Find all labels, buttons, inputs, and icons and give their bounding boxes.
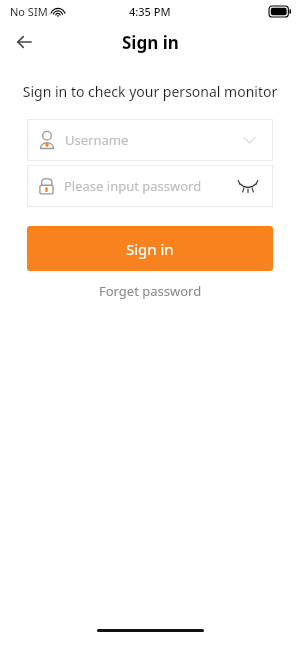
button[interactable]: Show account list (237, 128, 261, 152)
staticText: Please input password (64, 177, 235, 195)
button[interactable]: Please input password (27, 165, 273, 207)
button[interactable]: Forget password (87, 279, 214, 303)
button[interactable]: Show password (235, 173, 261, 199)
staticText: No SIM (10, 4, 48, 19)
staticText: Sign in to check your personal monitor (8, 82, 292, 101)
button[interactable]: Username (27, 119, 273, 161)
button[interactable]: Back (8, 26, 40, 58)
staticText: Sign in (126, 239, 174, 259)
staticText: Sign in (122, 31, 179, 54)
staticText: 4:35 PM (129, 4, 171, 19)
staticText: Username (65, 131, 237, 149)
button[interactable]: Sign in (27, 226, 273, 271)
